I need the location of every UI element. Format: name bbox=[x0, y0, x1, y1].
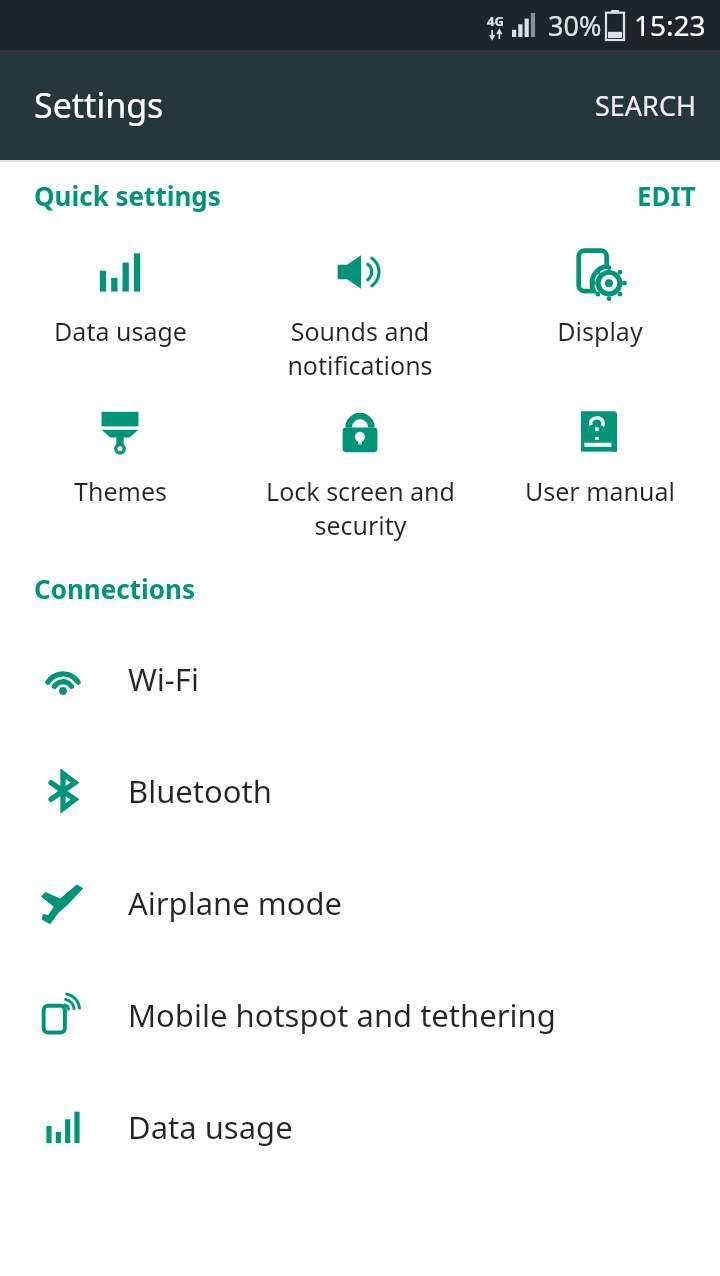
staticText: Data usage bbox=[54, 314, 187, 348]
staticText: 15:23 bbox=[634, 6, 706, 44]
staticText: Settings bbox=[34, 82, 164, 128]
staticText: Bluetooth bbox=[128, 770, 272, 812]
staticText: Mobile hotspot and tethering bbox=[128, 994, 556, 1036]
button[interactable]: Wi-Fi bbox=[0, 623, 720, 735]
button[interactable]: Data usage bbox=[0, 228, 240, 388]
staticText: Lock screen and security bbox=[266, 474, 455, 542]
button[interactable]: Mobile hotspot and tethering bbox=[0, 959, 720, 1071]
button[interactable]: User manual bbox=[480, 388, 720, 553]
staticText: Display bbox=[557, 314, 643, 348]
staticText: Sounds and notifications bbox=[287, 314, 433, 382]
button[interactable]: Display bbox=[480, 228, 720, 388]
staticText: Quick settings bbox=[34, 178, 221, 213]
staticText: User manual bbox=[525, 474, 675, 508]
staticText: Wi-Fi bbox=[128, 658, 199, 700]
button[interactable]: Sounds and notifications bbox=[240, 228, 480, 388]
staticText: 4G bbox=[487, 12, 504, 30]
staticText: Airplane mode bbox=[128, 882, 343, 924]
staticText: 30% bbox=[548, 7, 602, 44]
button[interactable]: EDIT bbox=[613, 166, 720, 225]
button[interactable]: SEARCH bbox=[571, 69, 720, 142]
staticText: Connections bbox=[34, 571, 195, 606]
button[interactable]: Data usage bbox=[0, 1071, 720, 1183]
staticText: EDIT bbox=[637, 178, 696, 213]
staticText: Themes bbox=[74, 474, 167, 508]
button[interactable]: Bluetooth bbox=[0, 735, 720, 847]
staticText: SEARCH bbox=[595, 87, 696, 124]
button[interactable]: Lock screen and security bbox=[240, 388, 480, 553]
button[interactable]: Themes bbox=[0, 388, 240, 553]
staticText: Data usage bbox=[128, 1106, 293, 1148]
button[interactable]: Airplane mode bbox=[0, 847, 720, 959]
